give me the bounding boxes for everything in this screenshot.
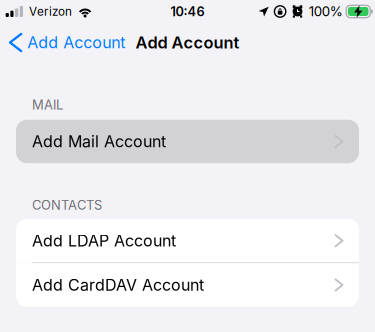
button[interactable]: Add LDAP Account [16,219,359,262]
staticText: Add LDAP Account [32,231,176,250]
staticText: Add CardDAV Account [32,275,204,295]
staticText: Add Account [135,33,239,52]
staticText: Verizon [29,4,72,19]
button[interactable]: Add CardDAV Account [16,263,359,307]
staticText: 100% [309,3,343,19]
staticText: CONTACTS [32,197,102,213]
button[interactable]: Add Mail Account [16,120,359,163]
button[interactable]: Add Account [0,24,133,60]
staticText: MAIL [32,97,63,113]
staticText: Add Account [27,33,125,52]
staticText: Add Mail Account [32,132,166,151]
staticText: 10:46 [170,4,204,19]
